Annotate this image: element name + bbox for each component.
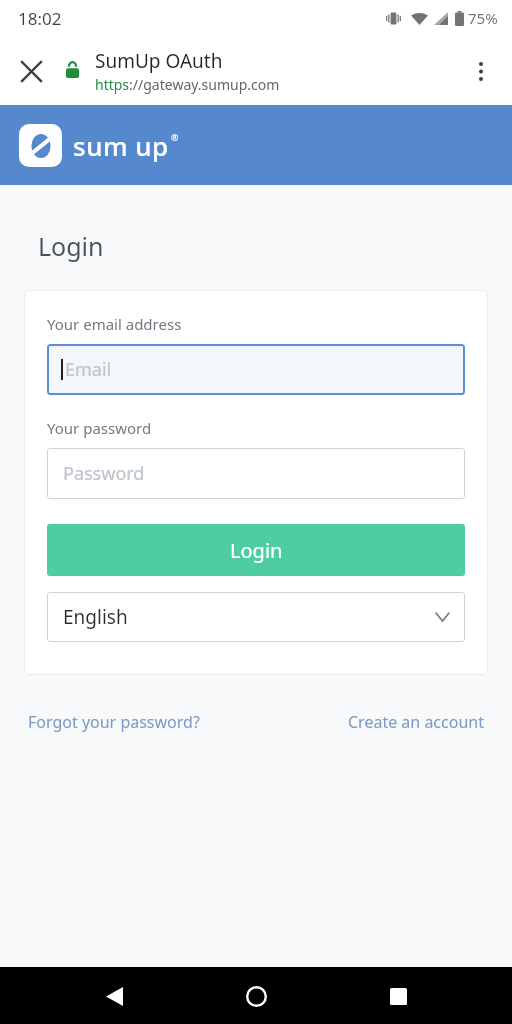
button[interactable]: More options: [458, 48, 504, 94]
staticText: English: [63, 604, 128, 630]
staticText: Password: [63, 461, 145, 486]
button[interactable]: Email: [47, 344, 465, 395]
button[interactable]: Back: [86, 968, 142, 1024]
staticText: sum up: [73, 128, 169, 163]
button[interactable]: Home: [228, 968, 284, 1024]
staticText: Your password: [47, 418, 152, 438]
staticText: Your email address: [47, 314, 182, 334]
staticText: Login: [230, 537, 283, 564]
staticText: 75%: [468, 8, 498, 28]
staticText: Forgot your password?: [28, 711, 200, 733]
button[interactable]: Password: [47, 448, 465, 499]
staticText: 18:02: [18, 7, 62, 30]
button[interactable]: Login: [47, 524, 465, 576]
staticText: Email: [65, 357, 112, 382]
button[interactable]: Recent apps: [370, 968, 426, 1024]
button[interactable]: English: [47, 592, 465, 642]
staticText: Login: [38, 229, 104, 263]
staticText: ®: [171, 131, 179, 143]
button[interactable]: Create an account: [344, 707, 488, 737]
staticText: https://gateway.sumup.com: [95, 75, 280, 94]
button[interactable]: Forgot your password?: [24, 707, 204, 737]
button[interactable]: Close: [8, 48, 54, 94]
staticText: SumUp OAuth: [95, 48, 223, 74]
staticText: Create an account: [348, 711, 484, 733]
